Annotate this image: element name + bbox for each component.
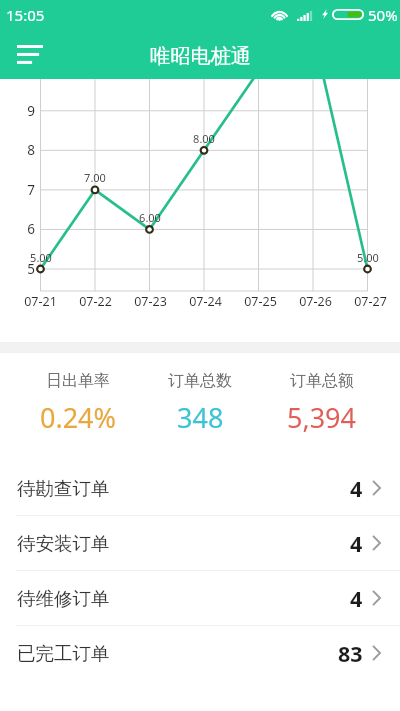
staticText: 348 [177,399,224,436]
staticText: 07-24 [178,293,233,310]
staticText: 4 [350,474,363,503]
staticText: 15:05 [6,5,45,25]
staticText: 待安装订单 [17,532,110,555]
staticText: 8 [0,141,35,159]
button[interactable]: 已完工订单 [0,626,400,680]
staticText: 9 [0,102,35,120]
staticText: 8.00 [177,131,231,146]
staticText: 订单总额 [290,371,354,391]
staticText: 07-27 [343,293,398,310]
staticText: 5,394 [287,399,357,436]
staticText: 日出单率 [46,371,110,391]
button[interactable]: 待维修订单 [0,571,400,625]
staticText: 唯昭电桩通 [150,44,251,69]
staticText: 4 [350,529,363,558]
button[interactable]: 待安装订单 [0,516,400,570]
staticText: 已完工订单 [17,642,110,665]
staticText: 6 [0,220,35,238]
staticText: 0.24% [40,399,117,436]
staticText: 6.00 [123,210,177,225]
staticText: 5.00 [14,250,68,265]
staticText: 83 [338,639,363,668]
staticText: 待维修订单 [17,587,110,610]
staticText: 50% [368,5,398,25]
button[interactable]: Open navigation menu [10,34,50,74]
staticText: 5.00 [341,250,395,265]
staticText: 订单总数 [168,371,232,391]
staticText: 07-25 [233,293,288,310]
staticText: 7 [0,181,35,199]
staticText: 4 [350,584,363,613]
staticText: 待勘查订单 [17,477,110,500]
staticText: 07-22 [68,293,123,310]
button[interactable]: 待勘查订单 [0,461,400,515]
staticText: 07-26 [288,293,343,310]
staticText: 07-23 [123,293,178,310]
staticText: 7.00 [68,170,122,185]
staticText: 5 [0,260,35,278]
staticText: 07-21 [13,293,68,310]
